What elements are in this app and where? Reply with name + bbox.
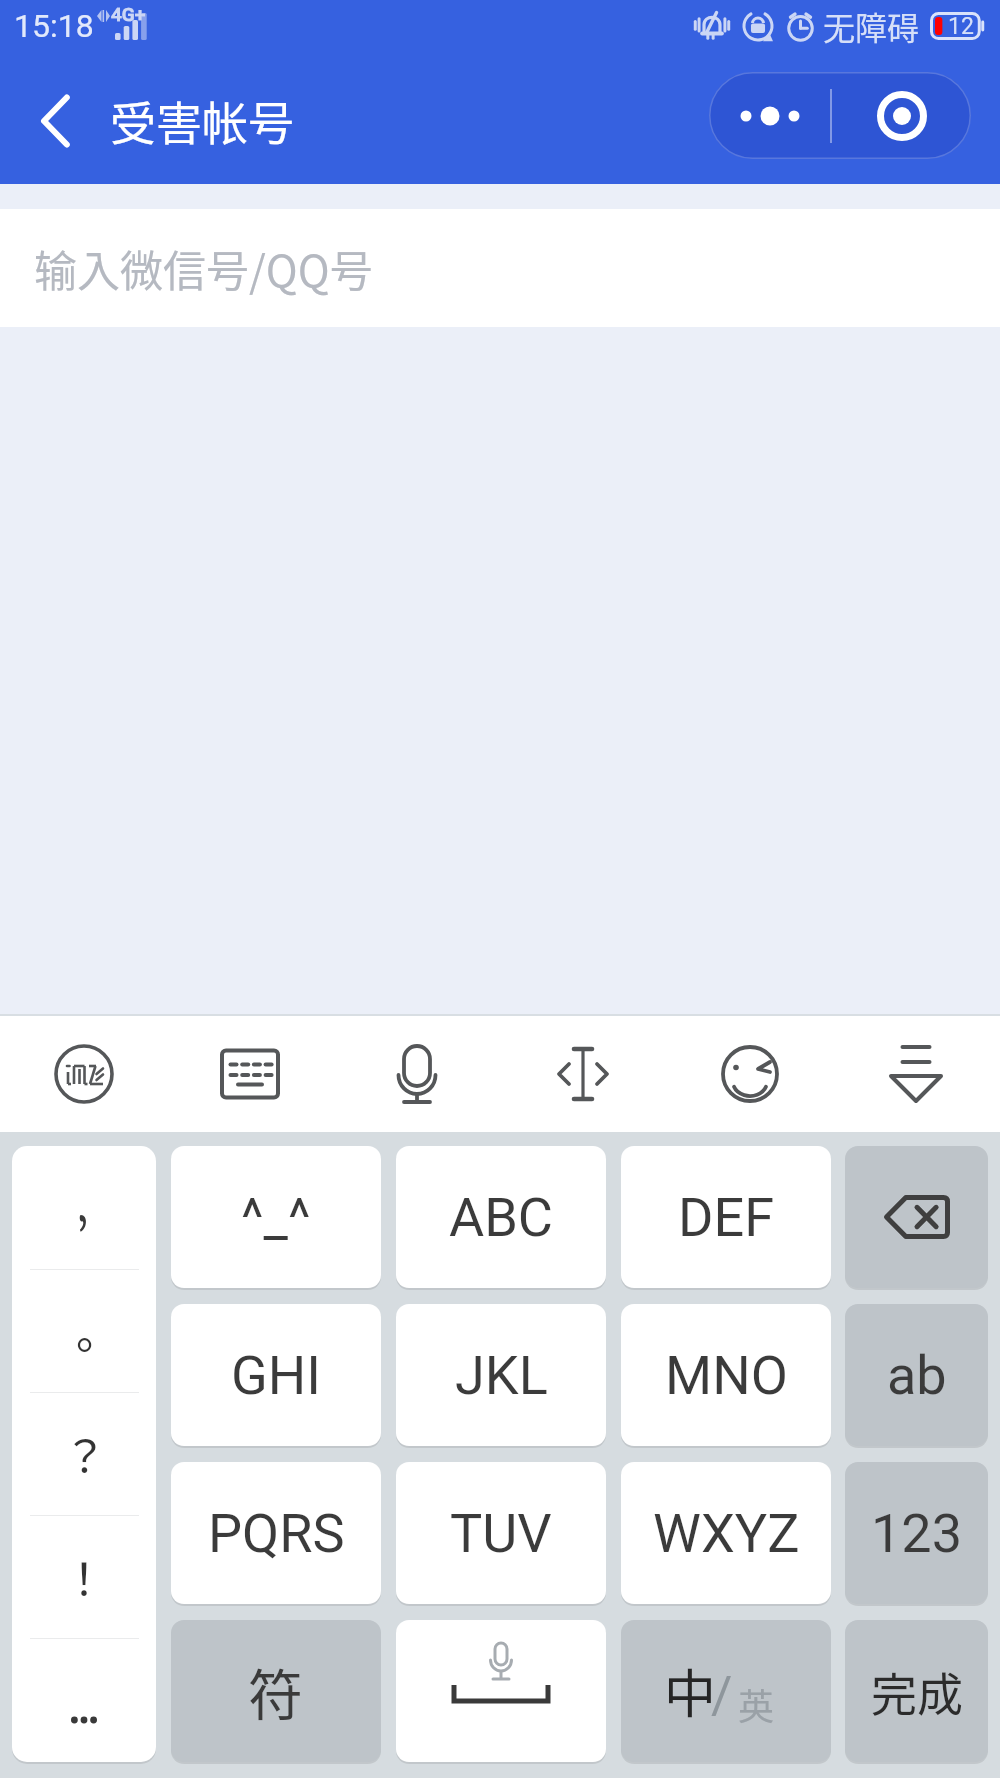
staticText: WXYZ	[653, 1502, 800, 1565]
button[interactable]: 中	[621, 1620, 831, 1762]
staticText: JKL	[455, 1344, 548, 1407]
button[interactable]: TUV	[396, 1462, 606, 1604]
staticText: 15:18	[14, 7, 94, 45]
staticText: 完成	[871, 1658, 963, 1725]
button[interactable]: Keyboard layout	[202, 1016, 298, 1132]
button[interactable]: DEF	[621, 1146, 831, 1288]
staticText: TUV	[450, 1502, 552, 1565]
staticText: 受害帐号	[110, 87, 294, 154]
button[interactable]: Move cursor	[535, 1016, 631, 1132]
button[interactable]: Voice input	[369, 1016, 465, 1132]
staticText: 英	[738, 1678, 775, 1730]
staticText: 123	[871, 1502, 963, 1565]
button[interactable]: JKL	[396, 1304, 606, 1446]
button[interactable]: 符	[171, 1620, 381, 1762]
button[interactable]: ab	[845, 1304, 988, 1446]
button[interactable]	[845, 1146, 988, 1288]
button[interactable]: ^_^	[171, 1146, 381, 1288]
staticText: ABC	[449, 1186, 554, 1249]
staticText: DEF	[678, 1186, 774, 1249]
button[interactable]: 。	[12, 1270, 156, 1393]
button[interactable]: ！	[12, 1516, 156, 1639]
button[interactable]: GHI	[171, 1304, 381, 1446]
button[interactable]: MNO	[621, 1304, 831, 1446]
staticText: /	[711, 1665, 733, 1726]
button[interactable]: ABC	[396, 1146, 606, 1288]
staticText: 4G+	[111, 3, 146, 25]
button[interactable]: ？	[12, 1393, 156, 1516]
button[interactable]: Close mini program	[832, 72, 971, 159]
staticText: 12	[948, 13, 974, 40]
button[interactable]: 123	[845, 1462, 988, 1604]
button[interactable]: 完成	[845, 1620, 988, 1762]
staticText: MNO	[665, 1344, 788, 1407]
button[interactable]	[12, 1639, 156, 1762]
staticText: ab	[887, 1344, 947, 1407]
button[interactable]	[12, 1146, 156, 1270]
button[interactable]	[396, 1620, 606, 1762]
staticText: 输入微信号/QQ号	[34, 237, 373, 299]
staticText: GHI	[231, 1344, 321, 1407]
staticText: PQRS	[208, 1502, 345, 1565]
staticText: ？	[63, 1422, 107, 1486]
staticText: 。	[76, 1298, 120, 1362]
button[interactable]: WXYZ	[621, 1462, 831, 1604]
button[interactable]: Back	[24, 89, 88, 153]
button[interactable]: More options	[709, 72, 830, 159]
button[interactable]: Input method	[36, 1016, 132, 1132]
staticText: ！	[62, 1545, 106, 1609]
button[interactable]: Emoji	[702, 1016, 798, 1132]
staticText: ^_^	[241, 1186, 311, 1249]
staticText: 中	[664, 1653, 717, 1728]
staticText: 符	[248, 1651, 304, 1731]
staticText: 无障碍	[823, 3, 920, 49]
button[interactable]: Hide keyboard	[868, 1016, 964, 1132]
button[interactable]: PQRS	[171, 1462, 381, 1604]
